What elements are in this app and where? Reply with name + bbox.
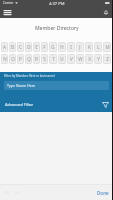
staticText: Member Directory xyxy=(35,25,79,32)
staticText: O xyxy=(11,56,15,62)
staticText: Advanced Filter xyxy=(5,102,34,107)
button[interactable]: O xyxy=(9,54,16,64)
button[interactable]: T xyxy=(49,54,57,64)
button[interactable]: X xyxy=(85,54,93,64)
staticText: W xyxy=(78,56,83,62)
staticText: C xyxy=(19,44,22,50)
staticText: X xyxy=(88,56,91,62)
button[interactable]: K xyxy=(85,42,93,52)
button[interactable]: G xyxy=(49,42,57,52)
button[interactable]: Q xyxy=(25,54,32,64)
staticText: M xyxy=(105,44,110,50)
staticText: N xyxy=(3,56,7,62)
button[interactable]: N xyxy=(1,54,8,64)
staticText: Z xyxy=(106,56,109,62)
button[interactable]: V xyxy=(67,54,75,64)
button[interactable]: W xyxy=(76,54,84,64)
button[interactable]: C xyxy=(17,42,24,52)
button[interactable]: R xyxy=(33,54,40,64)
staticText: D xyxy=(27,44,31,50)
staticText: T xyxy=(52,56,55,62)
button[interactable]: P xyxy=(17,54,24,64)
staticText: I xyxy=(70,44,72,50)
button[interactable]: Type Name Here xyxy=(4,81,109,90)
button[interactable]: I xyxy=(67,42,75,52)
staticText: Done xyxy=(97,190,109,196)
button[interactable]: S xyxy=(41,54,48,64)
staticText: H xyxy=(60,44,64,50)
button[interactable]: Notifications xyxy=(100,6,112,18)
button[interactable]: H xyxy=(58,42,66,52)
button[interactable]: E xyxy=(33,42,40,52)
staticText: Y xyxy=(97,56,100,62)
button[interactable]: Z xyxy=(103,54,111,64)
staticText: S xyxy=(43,56,46,62)
button[interactable]: F xyxy=(41,42,48,52)
button[interactable]: Menu xyxy=(1,6,13,18)
staticText: Filter by Member (first or last name) xyxy=(4,74,55,78)
staticText: Carrier xyxy=(3,1,14,5)
button[interactable]: J xyxy=(76,42,84,52)
staticText: V xyxy=(70,56,73,62)
staticText: A xyxy=(3,44,6,50)
staticText: 4:37 PM xyxy=(49,1,65,7)
staticText: J xyxy=(79,44,81,50)
staticText: G xyxy=(51,44,55,50)
button[interactable]: U xyxy=(58,54,66,64)
button[interactable]: M xyxy=(103,42,111,52)
button[interactable]: L xyxy=(94,42,102,52)
button[interactable]: D xyxy=(25,42,32,52)
staticText: L xyxy=(97,44,100,50)
button[interactable]: Y xyxy=(94,54,102,64)
staticText: Q xyxy=(27,56,31,62)
button[interactable]: B xyxy=(9,42,16,52)
staticText: U xyxy=(60,56,64,62)
staticText: K xyxy=(88,44,91,50)
staticText: B xyxy=(11,44,14,50)
staticText: E xyxy=(35,44,38,50)
staticText: P xyxy=(19,56,22,62)
staticText: Type Name Here xyxy=(7,83,36,88)
staticText: R xyxy=(35,56,38,62)
button[interactable]: A xyxy=(1,42,8,52)
button[interactable]: Advanced Filter xyxy=(0,97,113,112)
staticText: F xyxy=(43,44,46,50)
button[interactable]: Done xyxy=(97,190,109,196)
